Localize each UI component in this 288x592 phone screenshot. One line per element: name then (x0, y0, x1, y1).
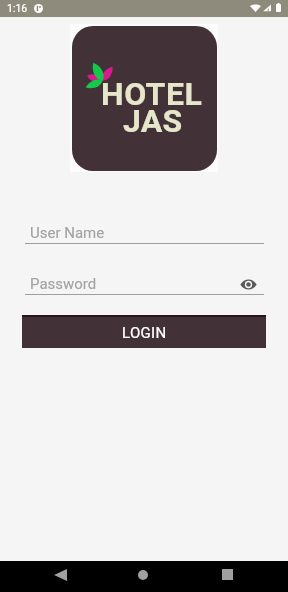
button[interactable]: Home (127, 559, 159, 590)
button[interactable]: User Name (0, 224, 288, 250)
staticText: User Name (30, 224, 105, 242)
staticText: 1:16 (7, 2, 28, 14)
button[interactable]: Show password (236, 272, 260, 296)
staticText: HOTEL (101, 75, 203, 113)
button[interactable]: LOGIN (22, 315, 266, 348)
button[interactable]: Recent apps (211, 559, 243, 590)
button[interactable]: Password (0, 275, 288, 301)
staticText: LOGIN (122, 324, 167, 342)
button[interactable]: Back (44, 559, 76, 590)
staticText: JAS (123, 102, 183, 140)
staticText: Password (30, 275, 97, 293)
